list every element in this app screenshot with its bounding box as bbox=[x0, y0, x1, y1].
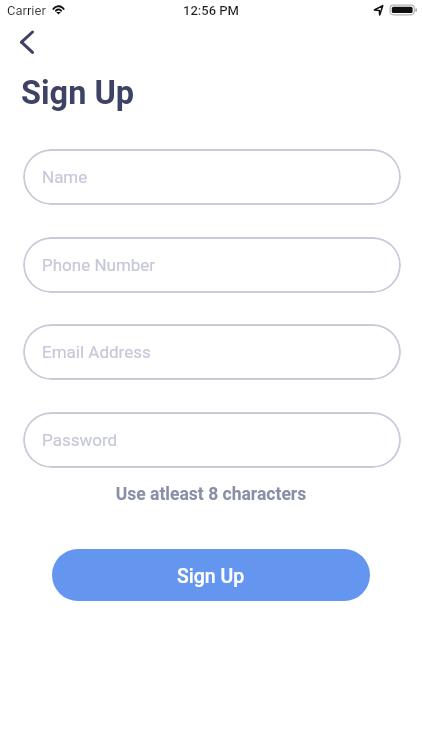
button[interactable]: Email Address bbox=[23, 324, 401, 380]
button[interactable]: Password bbox=[23, 412, 401, 468]
staticText: Name bbox=[42, 167, 88, 187]
button[interactable]: Sign Up bbox=[52, 549, 370, 601]
staticText: Phone Number bbox=[42, 255, 156, 275]
button[interactable]: Back bbox=[13, 27, 41, 55]
staticText: Sign Up bbox=[177, 565, 245, 588]
staticText: 12:56 PM bbox=[0, 3, 422, 18]
button[interactable]: Name bbox=[23, 149, 401, 205]
button[interactable]: Phone Number bbox=[23, 237, 401, 293]
staticText: Use atleast 8 characters bbox=[0, 484, 422, 505]
staticText: Password bbox=[42, 430, 118, 450]
staticText: Sign Up bbox=[21, 74, 135, 112]
staticText: Carrier bbox=[7, 3, 46, 18]
staticText: Email Address bbox=[42, 342, 151, 362]
